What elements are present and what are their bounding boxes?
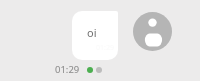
button[interactable]: oi <box>72 11 118 60</box>
button[interactable]: Pending <box>96 67 102 73</box>
staticText: 01:29 <box>55 63 80 76</box>
button[interactable]: Delivered <box>87 67 93 73</box>
button[interactable]: Contact avatar <box>133 12 172 51</box>
staticText: oi <box>87 25 97 40</box>
